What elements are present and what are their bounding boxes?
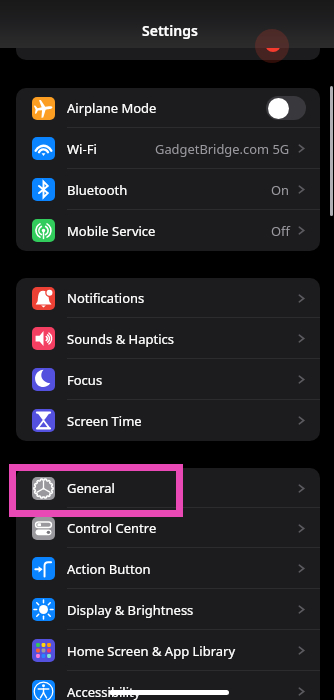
staticText: Focus — [67, 371, 103, 389]
staticText: Off — [271, 222, 290, 240]
staticText: Bluetooth — [67, 181, 128, 199]
staticText: GadgetBridge.com 5G — [155, 140, 290, 158]
staticText: Wi-Fi — [67, 140, 97, 158]
button[interactable]: Display & Brightness — [16, 589, 320, 630]
button[interactable]: Screen Time — [16, 400, 320, 441]
button[interactable]: Focus — [16, 359, 320, 400]
staticText: Screen Time — [67, 412, 142, 430]
button[interactable]: Action Button — [16, 548, 320, 589]
staticText: General — [67, 479, 115, 497]
button[interactable]: Mobile Service — [16, 210, 320, 251]
button[interactable]: Accessibility — [16, 671, 320, 700]
staticText: On — [271, 181, 290, 199]
staticText: Home Screen & App Library — [67, 642, 236, 660]
staticText: Airplane Mode — [67, 99, 157, 117]
staticText: Settings — [142, 21, 198, 40]
button[interactable]: Sounds & Haptics — [16, 318, 320, 359]
staticText: Control Centre — [67, 519, 157, 537]
button[interactable]: Notifications — [16, 278, 320, 318]
staticText: Accessibility — [67, 683, 141, 700]
button[interactable]: Bluetooth — [16, 169, 320, 210]
button[interactable]: Airplane Mode — [16, 88, 320, 128]
button[interactable]: Home Screen & App Library — [16, 630, 320, 671]
button[interactable]: Wi-Fi — [16, 128, 320, 169]
staticText: Notifications — [67, 289, 145, 307]
staticText: Display & Brightness — [67, 601, 194, 619]
staticText: Sounds & Haptics — [67, 330, 175, 348]
staticText: Mobile Service — [67, 222, 156, 240]
button[interactable]: Control Centre — [16, 508, 320, 548]
staticText: Action Button — [67, 560, 151, 578]
button[interactable]: General — [16, 468, 320, 508]
